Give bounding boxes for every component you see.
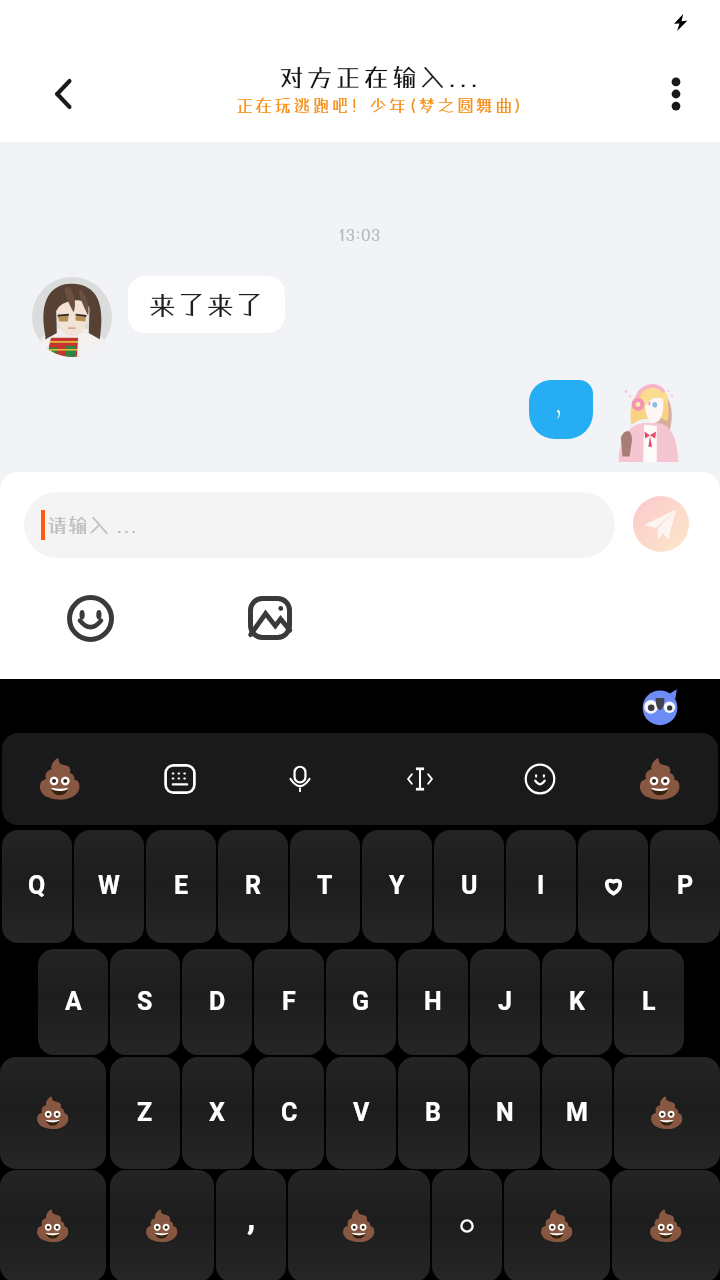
button[interactable]: 💩 (110, 1170, 214, 1280)
button[interactable]: R (218, 830, 288, 943)
staticText: H (424, 987, 442, 1016)
staticText: 来了来了 (149, 289, 265, 321)
button[interactable]: Z (110, 1057, 180, 1169)
staticText: D (209, 987, 226, 1016)
button[interactable]: Emoji (58, 586, 122, 650)
button[interactable]: Emoji (510, 749, 570, 809)
button[interactable]: H (398, 949, 468, 1055)
button[interactable]: F (254, 949, 324, 1055)
button[interactable]: Y (362, 830, 432, 943)
staticText: 💩 (538, 1208, 576, 1243)
button[interactable]: 请输入 ... (24, 492, 615, 558)
button[interactable]: More options (646, 64, 706, 124)
staticText: 💩 (34, 1208, 72, 1243)
staticText: C (281, 1098, 298, 1127)
button[interactable]: Move cursor (390, 749, 450, 809)
staticText: G (352, 987, 370, 1016)
staticText: E (174, 871, 189, 900)
button[interactable]: L (614, 949, 684, 1055)
staticText: 💩 (34, 1095, 72, 1130)
staticText: M (566, 1098, 588, 1127)
button[interactable]: Back (34, 64, 94, 124)
staticText: U (461, 871, 478, 900)
staticText: Z (137, 1098, 153, 1127)
staticText: V (353, 1098, 370, 1127)
button[interactable]: , (216, 1170, 286, 1280)
staticText: 正在玩逃跑吧！少年(梦之圆舞曲) (236, 95, 525, 115)
button[interactable]: B (398, 1057, 468, 1169)
button[interactable]: M (542, 1057, 612, 1169)
button[interactable] (529, 380, 593, 439)
button[interactable] (432, 1170, 502, 1280)
button[interactable]: Keyboard (150, 749, 210, 809)
button[interactable]: Pick image (238, 586, 302, 650)
button[interactable]: 💩 (504, 1170, 610, 1280)
button[interactable]: J (470, 949, 540, 1055)
button[interactable]: I (506, 830, 576, 943)
button[interactable]: 💩 (0, 1170, 106, 1280)
staticText: 💩 (36, 757, 84, 802)
staticText: P (677, 871, 694, 900)
button[interactable]: P (650, 830, 720, 943)
staticText: B (425, 1098, 441, 1127)
staticText: F (282, 987, 296, 1016)
button[interactable]: K (542, 949, 612, 1055)
staticText: I (537, 871, 545, 900)
button[interactable]: S (110, 949, 180, 1055)
staticText: 💩 (647, 1208, 685, 1243)
staticText: 13:03 (339, 225, 381, 244)
button[interactable]: G (326, 949, 396, 1055)
button[interactable]: 💩 (0, 1057, 106, 1169)
staticText: 对方正在输入... (279, 62, 482, 91)
button[interactable]: Send (633, 496, 689, 552)
staticText: 💩 (636, 757, 684, 802)
button[interactable]: A (38, 949, 108, 1055)
staticText: Q (28, 871, 46, 900)
staticText: K (569, 987, 585, 1016)
button[interactable]: V (326, 1057, 396, 1169)
button[interactable] (578, 830, 648, 943)
button[interactable]: X (182, 1057, 252, 1169)
staticText: R (245, 871, 261, 900)
staticText: , (247, 1197, 256, 1237)
button[interactable]: 💩 (288, 1170, 430, 1280)
staticText: W (98, 871, 120, 900)
staticText: 💩 (143, 1208, 181, 1243)
button[interactable]: C (254, 1057, 324, 1169)
button[interactable]: U (434, 830, 504, 943)
staticText: 💩 (648, 1095, 686, 1130)
button[interactable]: 💩 (614, 1057, 720, 1169)
button[interactable]: W (74, 830, 144, 943)
staticText: Y (389, 871, 405, 900)
staticText: S (137, 987, 153, 1016)
staticText: J (498, 987, 512, 1016)
button[interactable]: Q (2, 830, 72, 943)
staticText: N (496, 1098, 514, 1127)
staticText: L (642, 987, 656, 1016)
button[interactable]: 来了来了 (128, 276, 285, 333)
button[interactable]: E (146, 830, 216, 943)
button[interactable]: 💩 (30, 749, 90, 809)
button[interactable]: N (470, 1057, 540, 1169)
button[interactable]: Voice input (270, 749, 330, 809)
staticText: A (65, 987, 82, 1016)
button[interactable]: 💩 (630, 749, 690, 809)
button[interactable]: Contact avatar (32, 277, 112, 357)
button[interactable]: D (182, 949, 252, 1055)
staticText: X (209, 1098, 225, 1127)
staticText: 请输入 ... (47, 513, 138, 537)
staticText: 💩 (340, 1208, 378, 1243)
button[interactable]: My avatar (608, 378, 688, 458)
button[interactable]: T (290, 830, 360, 943)
button[interactable]: 💩 (612, 1170, 720, 1280)
staticText: T (317, 871, 333, 900)
